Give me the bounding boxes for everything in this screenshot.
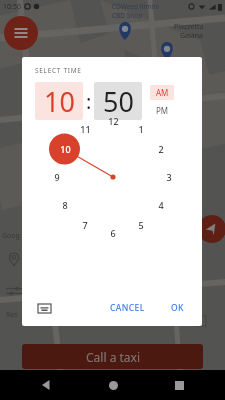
button[interactable]: 10 [54, 140, 76, 158]
staticText: 3 [166, 171, 172, 183]
button[interactable]: 4 [150, 196, 172, 214]
button[interactable]: PM [150, 104, 174, 117]
button[interactable]: 8 [54, 196, 76, 214]
staticText: 6 [110, 227, 116, 239]
staticText: Res [6, 310, 18, 320]
button[interactable]: Back [34, 373, 58, 397]
staticText: CANCEL [110, 302, 145, 314]
staticText: 10 [60, 143, 71, 155]
staticText: AM [156, 87, 169, 98]
staticText: CDWeed Rimini [112, 2, 159, 11]
staticText: 10:50 [3, 2, 21, 12]
staticText: Goog [2, 231, 20, 241]
staticText: 11 [80, 123, 91, 135]
button[interactable]: 1 [130, 120, 152, 138]
button[interactable]: 12 [102, 112, 124, 130]
staticText: OK [171, 302, 184, 314]
button[interactable]: 5 [130, 216, 152, 234]
staticText: CBD Shop [112, 11, 143, 20]
staticText: PM [156, 105, 169, 116]
button[interactable]: Switch to text input [34, 298, 54, 318]
button[interactable]: 9 [46, 168, 68, 186]
staticText: 8 [62, 199, 68, 211]
staticText: : [86, 88, 92, 115]
staticText: 12 [108, 115, 119, 127]
staticText: 5 [138, 219, 144, 231]
button[interactable]: Recents [167, 373, 191, 397]
staticText: 4 [158, 199, 164, 211]
staticText: 50 [103, 83, 134, 120]
button[interactable]: 10 [35, 82, 83, 120]
staticText: 2 [158, 143, 164, 155]
staticText: Gaiana [180, 31, 204, 41]
button[interactable]: AM [150, 85, 174, 100]
button[interactable]: 2 [150, 140, 172, 158]
button[interactable]: 6 [102, 224, 124, 242]
button[interactable]: 11 [74, 120, 96, 138]
button[interactable]: 7 [74, 216, 96, 234]
staticText: 7 [82, 219, 88, 231]
button[interactable]: 3 [158, 168, 180, 186]
staticText: Piazzetta [174, 22, 204, 32]
button[interactable]: 50 [94, 82, 142, 120]
staticText: 10 [44, 83, 75, 120]
staticText: 1 [138, 123, 144, 135]
staticText: Attach date and time [28, 318, 102, 328]
button[interactable]: Menu [4, 16, 38, 50]
staticText: Call a taxi [86, 349, 140, 365]
staticText: SELECT TIME [35, 66, 82, 75]
button[interactable]: CANCEL [104, 298, 151, 318]
button[interactable]: Call a taxi [22, 344, 203, 369]
button[interactable]: OK [165, 298, 190, 318]
button[interactable]: Home [101, 373, 125, 397]
staticText: 9 [54, 171, 60, 183]
